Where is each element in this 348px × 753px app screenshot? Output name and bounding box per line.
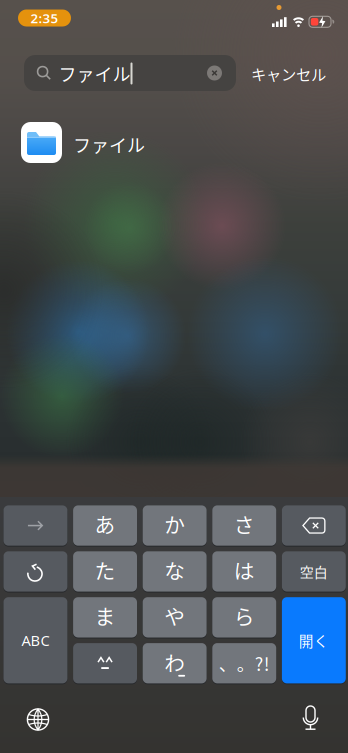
- staticText: さ: [234, 509, 255, 539]
- button[interactable]: キャンセル: [251, 62, 326, 85]
- button[interactable]: Delete: [282, 505, 346, 546]
- button[interactable]: ファイル: [0, 0, 348, 753]
- button[interactable]: ら: [212, 597, 276, 637]
- button[interactable]: は: [212, 551, 276, 592]
- button[interactable]: ま: [73, 597, 137, 637]
- staticText: 、。?!: [219, 650, 270, 676]
- button[interactable]: ^_^: [73, 643, 137, 683]
- button[interactable]: Clear text: [207, 65, 222, 80]
- button[interactable]: あ: [73, 505, 137, 546]
- staticText: は: [234, 555, 255, 585]
- staticText: ら: [234, 601, 255, 631]
- button[interactable]: や: [143, 597, 207, 637]
- staticText: ABC: [21, 631, 49, 650]
- staticText: や: [164, 601, 185, 631]
- staticText: あ: [94, 509, 115, 539]
- button[interactable]: Undo: [3, 551, 67, 592]
- button[interactable]: な: [143, 551, 207, 592]
- staticText: 空白: [300, 561, 328, 582]
- button[interactable]: ABC: [3, 597, 67, 683]
- staticText: な: [164, 555, 185, 585]
- button[interactable]: わ: [143, 643, 207, 683]
- button[interactable]: 空白: [282, 551, 346, 592]
- staticText: 開く: [299, 630, 329, 651]
- staticText: わ: [164, 647, 185, 677]
- button[interactable]: Next keyboard: [26, 708, 49, 731]
- button[interactable]: 開く: [282, 597, 346, 683]
- button[interactable]: か: [143, 505, 207, 546]
- staticText: た: [94, 555, 115, 585]
- staticText: ま: [94, 601, 115, 631]
- button[interactable]: さ: [212, 505, 276, 546]
- staticText: ファイル: [73, 131, 145, 158]
- staticText: キャンセル: [251, 62, 326, 85]
- button[interactable]: 、。?!: [212, 643, 276, 683]
- button[interactable]: Dictation: [303, 706, 318, 732]
- staticText: か: [164, 509, 185, 539]
- button[interactable]: Cursor right: [3, 505, 67, 546]
- button[interactable]: た: [73, 551, 137, 592]
- staticText: 2:35: [30, 9, 58, 27]
- staticText: ファイル: [58, 60, 130, 87]
